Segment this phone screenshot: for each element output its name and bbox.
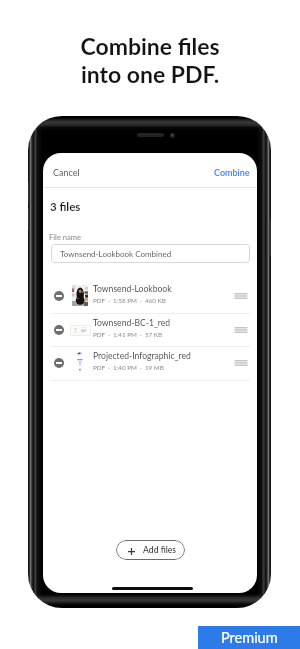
staticText: PDF · 1:58 PM · 460 KB xyxy=(93,297,166,305)
staticText: 3 files xyxy=(50,200,81,214)
staticText: Combine xyxy=(214,167,250,178)
button[interactable]: Remove file xyxy=(43,279,257,313)
button[interactable]: Townsend-Lookbook Combined xyxy=(51,244,250,263)
staticText: PDF · 1:41 PM · 57 KB xyxy=(93,331,163,339)
staticText: Add files xyxy=(143,545,177,555)
staticText: Townsend-BC-1_red xyxy=(93,318,171,328)
staticText: File name xyxy=(49,232,82,241)
staticText: Townsend-Lookbook xyxy=(93,284,172,294)
button[interactable]: Cancel xyxy=(49,163,84,182)
button[interactable]: Combine xyxy=(210,163,254,182)
other: Remove file xyxy=(54,358,64,368)
staticText: Premium xyxy=(221,629,278,646)
other: Remove file xyxy=(54,291,64,301)
button[interactable]: Remove file xyxy=(43,313,257,347)
button[interactable]: Reorder xyxy=(232,354,250,372)
other: Remove file xyxy=(54,325,64,335)
button[interactable]: Remove file xyxy=(43,346,257,380)
staticText: Combine files into one PDF. xyxy=(80,32,220,88)
button[interactable]: Reorder xyxy=(232,287,250,305)
staticText: PDF · 1:40 PM · 19 MB xyxy=(93,364,164,372)
staticText: Projected-Infographic_red xyxy=(93,351,191,361)
button[interactable]: Reorder xyxy=(232,321,250,339)
button[interactable]: Premium xyxy=(198,626,300,649)
button[interactable]: Add files xyxy=(116,540,185,560)
staticText: Cancel xyxy=(53,167,80,178)
staticText: Townsend-Lookbook Combined xyxy=(60,249,172,259)
